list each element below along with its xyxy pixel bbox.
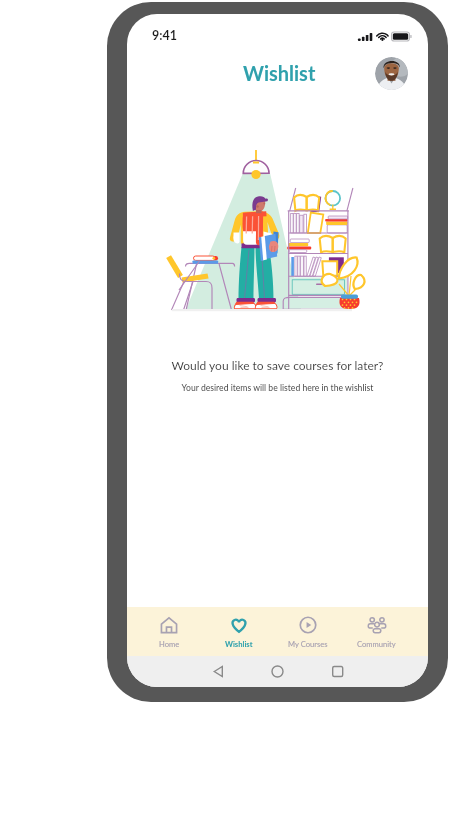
button[interactable]: My Courses	[273, 607, 342, 656]
staticText: Your desired items will be listed here i…	[127, 383, 428, 393]
staticText: 9:41	[152, 28, 177, 43]
button[interactable]: Community	[342, 607, 411, 656]
staticText: Community	[357, 639, 396, 648]
staticText: Would you like to save courses for later…	[127, 358, 428, 372]
staticText: Wishlist	[225, 639, 253, 648]
staticText: Wishlist	[243, 61, 316, 85]
button[interactable]: Profile	[375, 57, 408, 90]
staticText: Home	[159, 639, 180, 648]
staticText: My Courses	[288, 639, 328, 648]
button[interactable]: Home	[134, 607, 204, 656]
button[interactable]: Wishlist	[204, 607, 273, 656]
